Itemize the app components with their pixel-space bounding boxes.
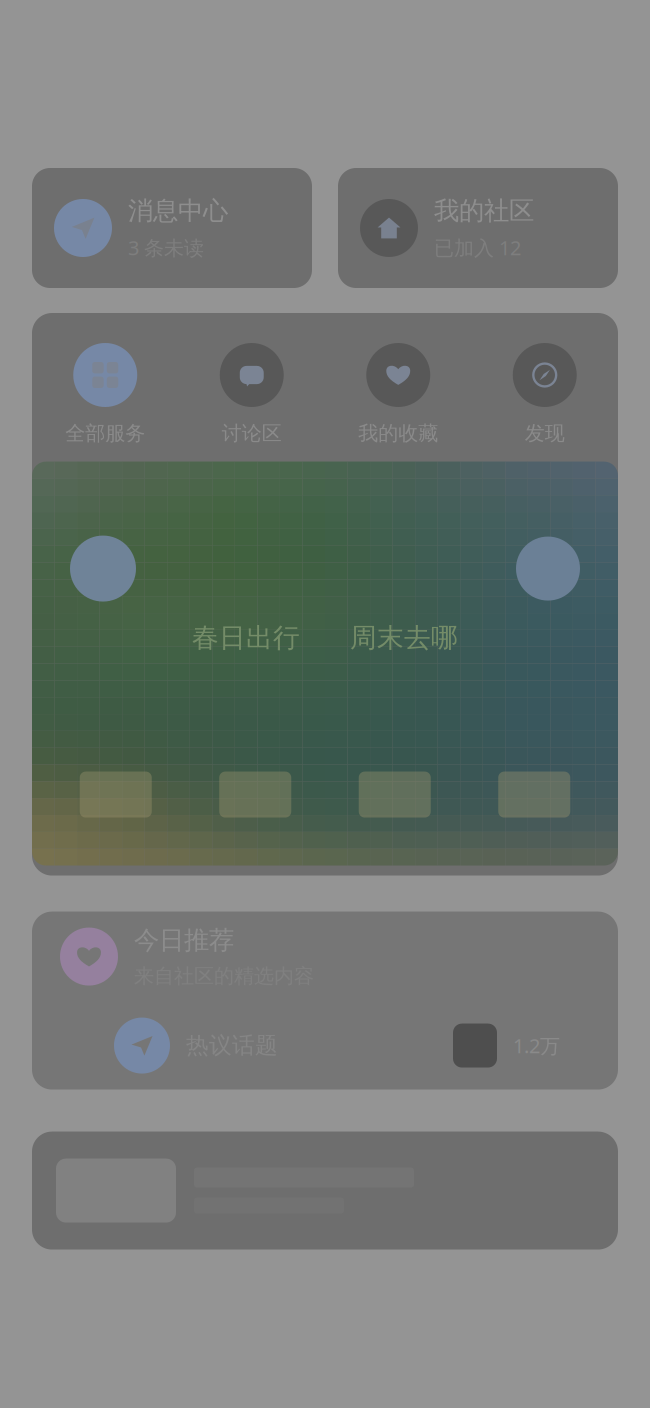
staticText: 周末去哪 xyxy=(350,622,458,654)
staticText: 我的社区 xyxy=(434,195,534,226)
staticText: 3 条未读 xyxy=(128,234,204,261)
button[interactable]: 全部服务 xyxy=(32,343,178,446)
button[interactable]: 春日出行 专题 xyxy=(32,462,618,866)
staticText: 春日出行 xyxy=(192,622,300,654)
staticText: 讨论区 xyxy=(222,421,282,446)
staticText: 全部服务 xyxy=(65,421,145,446)
staticText: 已加入 12 xyxy=(434,234,521,261)
staticText: 我的收藏 xyxy=(358,421,438,446)
staticText: 发现 xyxy=(525,421,565,446)
staticText: 今日推荐 xyxy=(134,925,234,956)
button[interactable]: 今日推荐 xyxy=(32,912,618,1002)
button[interactable]: 我的社区 xyxy=(338,168,618,288)
button[interactable]: 消息中心 xyxy=(32,168,312,288)
staticText: 1.2万 xyxy=(513,1032,560,1059)
button[interactable]: 我的收藏 xyxy=(325,343,471,446)
button[interactable]: 发现 xyxy=(471,343,618,446)
staticText: 来自社区的精选内容 xyxy=(134,964,314,988)
staticText: 热议话题 xyxy=(186,1032,278,1059)
staticText: 消息中心 xyxy=(128,195,228,226)
button[interactable] xyxy=(32,1132,618,1250)
button[interactable]: 热议话题 xyxy=(32,1002,618,1090)
button[interactable]: 讨论区 xyxy=(178,343,325,446)
